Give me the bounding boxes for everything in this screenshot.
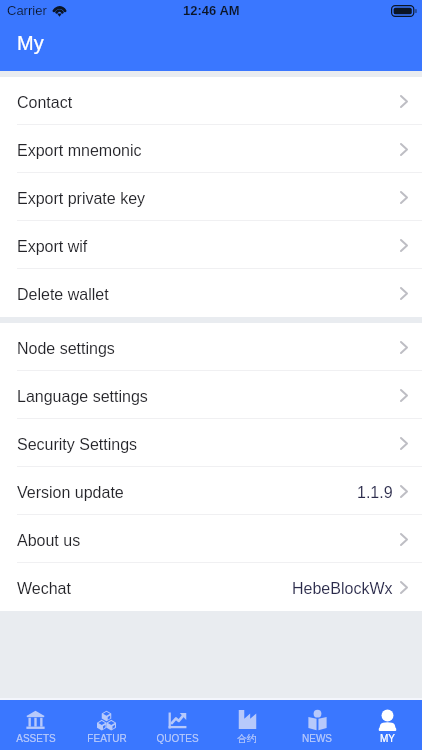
staticText: HebeBlockWx: [292, 580, 393, 598]
staticText: NEWS: [302, 733, 332, 744]
button[interactable]: ASSETS: [0, 700, 71, 750]
staticText: Contact: [17, 94, 73, 112]
staticText: Export wif: [17, 238, 88, 256]
button[interactable]: Export private key: [0, 173, 422, 221]
staticText: Export private key: [17, 190, 146, 208]
staticText: Export mnemonic: [17, 142, 142, 160]
button[interactable]: Wechat: [0, 563, 422, 611]
button[interactable]: Delete wallet: [0, 269, 422, 317]
button[interactable]: Export mnemonic: [0, 125, 422, 173]
staticText: Node settings: [17, 340, 115, 358]
button[interactable]: NEWS: [282, 700, 352, 750]
button[interactable]: Export wif: [0, 221, 422, 269]
button[interactable]: Language settings: [0, 371, 422, 419]
staticText: MY: [380, 733, 395, 744]
staticText: 12:46 AM: [183, 3, 240, 18]
staticText: ASSETS: [16, 733, 56, 744]
button[interactable]: FEATUR: [71, 700, 142, 750]
button[interactable]: Contact: [0, 77, 422, 125]
staticText: Delete wallet: [17, 286, 109, 304]
staticText: FEATUR: [87, 733, 127, 744]
staticText: 1.1.9: [357, 484, 393, 502]
staticText: Carrier: [7, 3, 47, 18]
staticText: Wechat: [17, 580, 71, 598]
button[interactable]: Version update: [0, 467, 422, 515]
button[interactable]: Node settings: [0, 323, 422, 371]
button[interactable]: Security Settings: [0, 419, 422, 467]
staticText: Language settings: [17, 388, 148, 406]
button[interactable]: 合约: [212, 700, 282, 750]
staticText: 合约: [237, 732, 257, 745]
button[interactable]: QUOTES: [142, 700, 212, 750]
staticText: Security Settings: [17, 436, 138, 454]
staticText: My: [17, 32, 44, 54]
staticText: Version update: [17, 484, 124, 502]
staticText: QUOTES: [156, 733, 199, 744]
button[interactable]: MY: [352, 700, 422, 750]
button[interactable]: About us: [0, 515, 422, 563]
staticText: About us: [17, 532, 81, 550]
